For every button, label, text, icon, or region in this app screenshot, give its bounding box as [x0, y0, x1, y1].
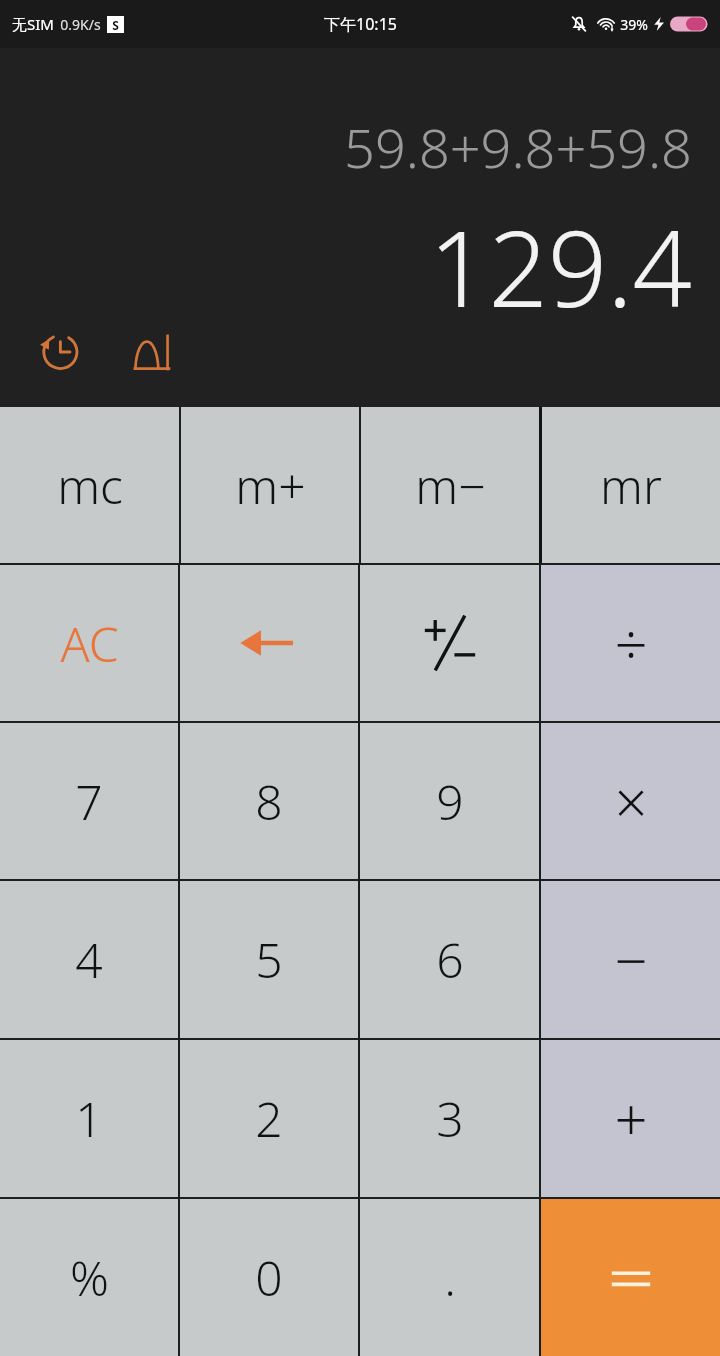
- button[interactable]: AC: [0, 565, 178, 721]
- staticText: +: [614, 1079, 648, 1158]
- staticText: AC: [60, 611, 119, 676]
- button[interactable]: 8: [180, 723, 358, 879]
- button[interactable]: 0: [180, 1199, 358, 1356]
- button[interactable]: 6: [360, 881, 539, 1038]
- staticText: 8: [255, 769, 283, 834]
- staticText: 39%: [620, 15, 648, 34]
- button[interactable]: Equals: [541, 1199, 720, 1356]
- staticText: 无SIM: [12, 14, 54, 34]
- button[interactable]: mr: [542, 407, 720, 563]
- button[interactable]: 2: [180, 1040, 358, 1197]
- button[interactable]: +: [541, 1040, 720, 1197]
- button[interactable]: ×: [541, 723, 720, 879]
- button[interactable]: mc: [0, 407, 179, 563]
- button[interactable]: Graph: [122, 323, 180, 381]
- button[interactable]: −: [541, 881, 720, 1038]
- button[interactable]: %: [0, 1199, 178, 1356]
- staticText: 59.8+9.8+59.8: [344, 110, 692, 184]
- staticText: mc: [57, 453, 123, 518]
- button[interactable]: 5: [180, 881, 358, 1038]
- staticText: 129.4: [429, 196, 692, 338]
- button[interactable]: 7: [0, 723, 178, 879]
- button[interactable]: m−: [361, 407, 539, 563]
- staticText: 9: [436, 769, 464, 834]
- staticText: ÷: [614, 604, 648, 683]
- staticText: mr: [600, 453, 662, 518]
- button[interactable]: ÷: [541, 565, 720, 721]
- staticText: m−: [415, 453, 486, 518]
- button[interactable]: 9: [360, 723, 539, 879]
- button[interactable]: 3: [360, 1040, 539, 1197]
- button[interactable]: History: [30, 323, 88, 381]
- staticText: S: [112, 17, 119, 33]
- button[interactable]: 4: [0, 881, 178, 1038]
- staticText: ×: [614, 762, 648, 841]
- staticText: 4: [75, 927, 103, 992]
- button[interactable]: Backspace: [180, 565, 358, 721]
- button[interactable]: m+: [181, 407, 359, 563]
- staticText: 5: [255, 927, 283, 992]
- button[interactable]: 1: [0, 1040, 178, 1197]
- staticText: 7: [75, 769, 103, 834]
- staticText: −: [614, 920, 648, 999]
- staticText: 2: [255, 1086, 283, 1151]
- staticText: %: [70, 1245, 109, 1310]
- staticText: 3: [436, 1086, 464, 1151]
- staticText: .: [444, 1245, 456, 1310]
- staticText: 1: [75, 1086, 103, 1151]
- button[interactable]: [360, 565, 539, 721]
- button[interactable]: .: [360, 1199, 539, 1356]
- staticText: 6: [436, 927, 464, 992]
- staticText: 下午10:15: [324, 13, 397, 35]
- staticText: 0.9K/s: [60, 15, 101, 34]
- staticText: m+: [235, 453, 306, 518]
- staticText: 0: [255, 1245, 283, 1310]
